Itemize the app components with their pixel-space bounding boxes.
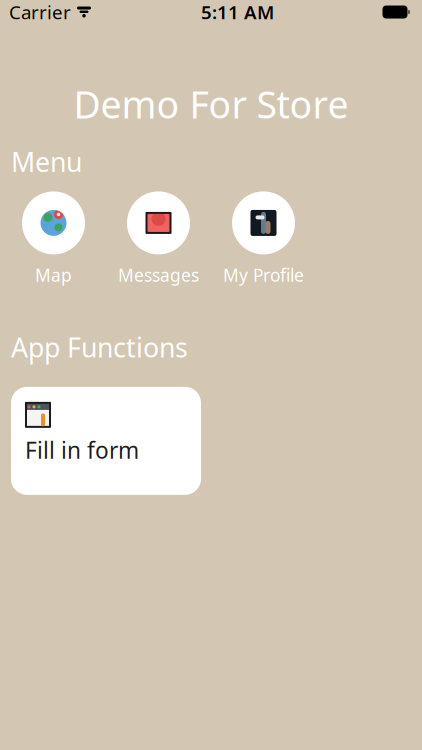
button[interactable]: Map [1,191,106,286]
staticText: 5:11 AM [201,0,274,24]
staticText: My Profile [223,263,304,286]
staticText: Carrier [9,0,71,24]
button[interactable]: My Profile [211,191,316,286]
staticText: Demo For Store [73,79,348,129]
staticText: Menu [11,144,82,179]
staticText: App Functions [11,329,188,365]
staticText: Fill in form [25,435,139,465]
button[interactable]: Fill in form [11,387,201,495]
button[interactable]: Messages [106,191,211,286]
staticText: Map [35,263,72,286]
staticText: Messages [118,263,199,286]
